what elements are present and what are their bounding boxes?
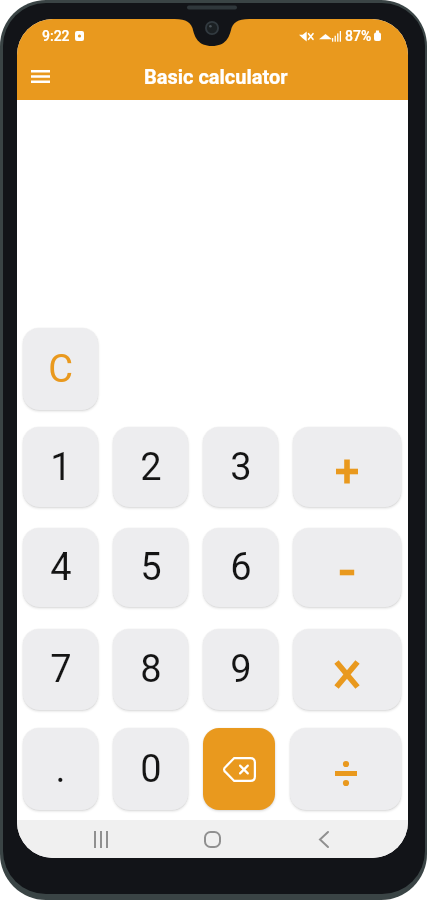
staticText: C	[48, 347, 73, 392]
button[interactable]: 8	[113, 629, 188, 710]
button[interactable]: 7	[23, 629, 98, 710]
staticText: 2	[140, 445, 162, 490]
button[interactable]: Menu	[18, 54, 62, 98]
button[interactable]: Back	[268, 820, 380, 858]
button[interactable]: 0	[113, 728, 188, 810]
staticText: .	[55, 747, 66, 792]
staticText: 1	[50, 445, 72, 490]
button[interactable]: 6	[203, 528, 278, 607]
button[interactable]: C	[23, 328, 98, 410]
staticText: 7	[50, 647, 72, 692]
staticText: 3	[230, 445, 252, 490]
button[interactable]: 9	[203, 629, 278, 710]
button[interactable]: Divide	[290, 728, 401, 810]
button[interactable]: .	[23, 728, 98, 810]
staticText: 9:22	[42, 28, 70, 44]
staticText: 6	[230, 545, 252, 590]
staticText: 4	[50, 545, 72, 590]
button[interactable]: Multiply	[293, 629, 401, 710]
button[interactable]: 1	[23, 427, 98, 507]
button[interactable]: Home	[156, 820, 268, 858]
button[interactable]: 3	[203, 427, 278, 507]
button[interactable]: 4	[23, 528, 98, 607]
button[interactable]: 5	[113, 528, 188, 607]
button[interactable]: Recents	[45, 820, 156, 858]
staticText: 8	[140, 647, 162, 692]
button[interactable]: Plus	[293, 427, 401, 507]
staticText: 9	[230, 647, 252, 692]
staticText: 0	[140, 747, 162, 792]
staticText: Basic calculator	[144, 65, 288, 88]
staticText: 87%	[345, 28, 372, 44]
button[interactable]: 2	[113, 427, 188, 507]
button[interactable]: Backspace	[203, 728, 275, 810]
staticText: 5	[140, 545, 162, 590]
button[interactable]: Minus	[293, 528, 401, 607]
